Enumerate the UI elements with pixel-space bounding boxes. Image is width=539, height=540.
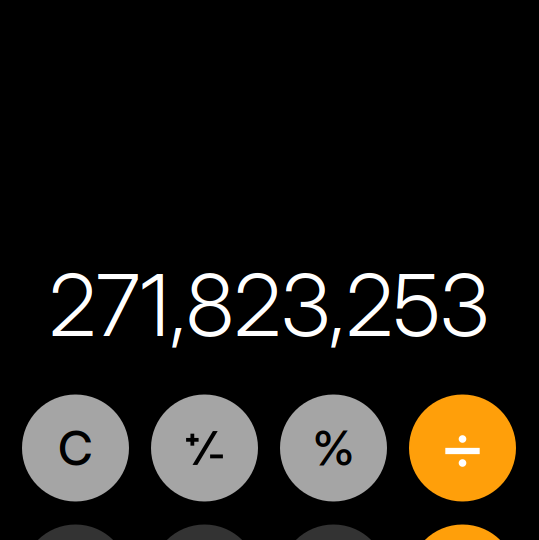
button[interactable]: 8	[151, 524, 258, 540]
button[interactable]: C	[22, 394, 129, 501]
button[interactable]: 7	[22, 524, 129, 540]
staticText: C	[58, 419, 93, 477]
button[interactable]: Plus Minus	[151, 394, 258, 501]
staticText: %	[312, 419, 354, 477]
button[interactable]: 9	[280, 524, 387, 540]
button[interactable]: Multiply	[409, 524, 516, 540]
staticText: 271,823,253	[49, 253, 489, 357]
button[interactable]: %	[280, 394, 387, 501]
button[interactable]: Divide	[409, 394, 516, 501]
